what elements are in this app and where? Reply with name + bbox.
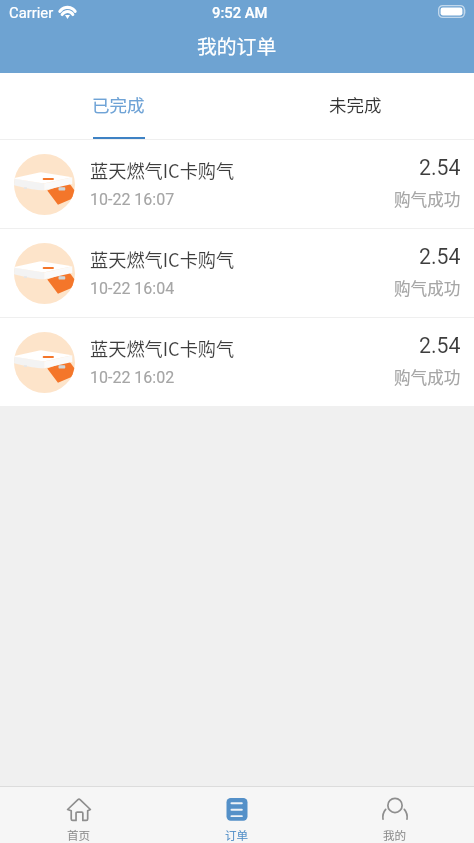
staticText: 订单 [225,827,249,843]
button[interactable]: 蓝天燃气IC卡购气 [0,140,474,228]
button[interactable]: 蓝天燃气IC卡购气 [0,318,474,406]
staticText: 2.54 [419,244,461,269]
staticText: 购气成功 [394,365,461,389]
staticText: 首页 [67,827,91,843]
staticText: 购气成功 [394,276,461,300]
button[interactable]: Orders [158,787,316,843]
staticText: 我的订单 [197,31,277,60]
staticText: 2.54 [419,155,461,180]
staticText: 已完成 [92,92,145,117]
staticText: 购气成功 [394,187,461,211]
staticText: Carrier [9,4,54,21]
button[interactable]: 已完成 [0,73,237,139]
staticText: 10-22 16:07 [90,190,175,209]
button[interactable]: Home [0,787,158,843]
staticText: 蓝天燃气IC卡购气 [90,246,235,272]
staticText: 9:52 AM [212,4,268,21]
staticText: 未完成 [329,92,382,117]
button[interactable]: 未完成 [237,73,474,139]
staticText: 蓝天燃气IC卡购气 [90,157,235,183]
staticText: 我的 [383,827,407,843]
button[interactable]: 蓝天燃气IC卡购气 [0,229,474,317]
button[interactable]: Profile [316,787,474,843]
staticText: 10-22 16:02 [90,368,175,387]
staticText: 2.54 [419,333,461,358]
staticText: 10-22 16:04 [90,279,175,298]
staticText: 蓝天燃气IC卡购气 [90,335,235,361]
